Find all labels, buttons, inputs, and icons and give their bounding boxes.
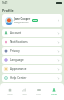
button[interactable]: Notifications [2, 38, 62, 46]
staticText: Notifications [10, 40, 28, 44]
staticText: Privacy [10, 49, 20, 53]
staticText: Appearance [10, 67, 27, 71]
button[interactable]: More options [57, 19, 60, 22]
staticText: Cards [36, 93, 41, 95]
staticText: Profile [51, 93, 57, 95]
button[interactable]: Appearance [2, 65, 62, 73]
button[interactable]: Home [3, 83, 17, 100]
staticText: PRO [33, 19, 37, 22]
button[interactable]: PRO [32, 19, 38, 22]
staticText: Language [10, 58, 24, 62]
button[interactable]: Jane Cooper [2, 14, 62, 27]
button[interactable]: Stats [17, 83, 31, 100]
staticText: Stats [22, 93, 27, 95]
staticText: Jane Cooper [14, 17, 31, 21]
staticText: 9:41 [2, 1, 8, 5]
button[interactable]: Account [2, 29, 62, 37]
button[interactable]: Profile [46, 83, 61, 100]
staticText: Home [7, 93, 13, 95]
button[interactable]: Language [2, 56, 62, 64]
staticText: Help Center [10, 76, 27, 80]
button[interactable]: Privacy [2, 47, 62, 55]
button[interactable]: Help Center [2, 74, 62, 82]
button[interactable]: Cards [31, 83, 46, 100]
staticText: Account [10, 31, 22, 35]
staticText: jane@mail.com [14, 21, 29, 24]
staticText: Profile [2, 8, 14, 13]
